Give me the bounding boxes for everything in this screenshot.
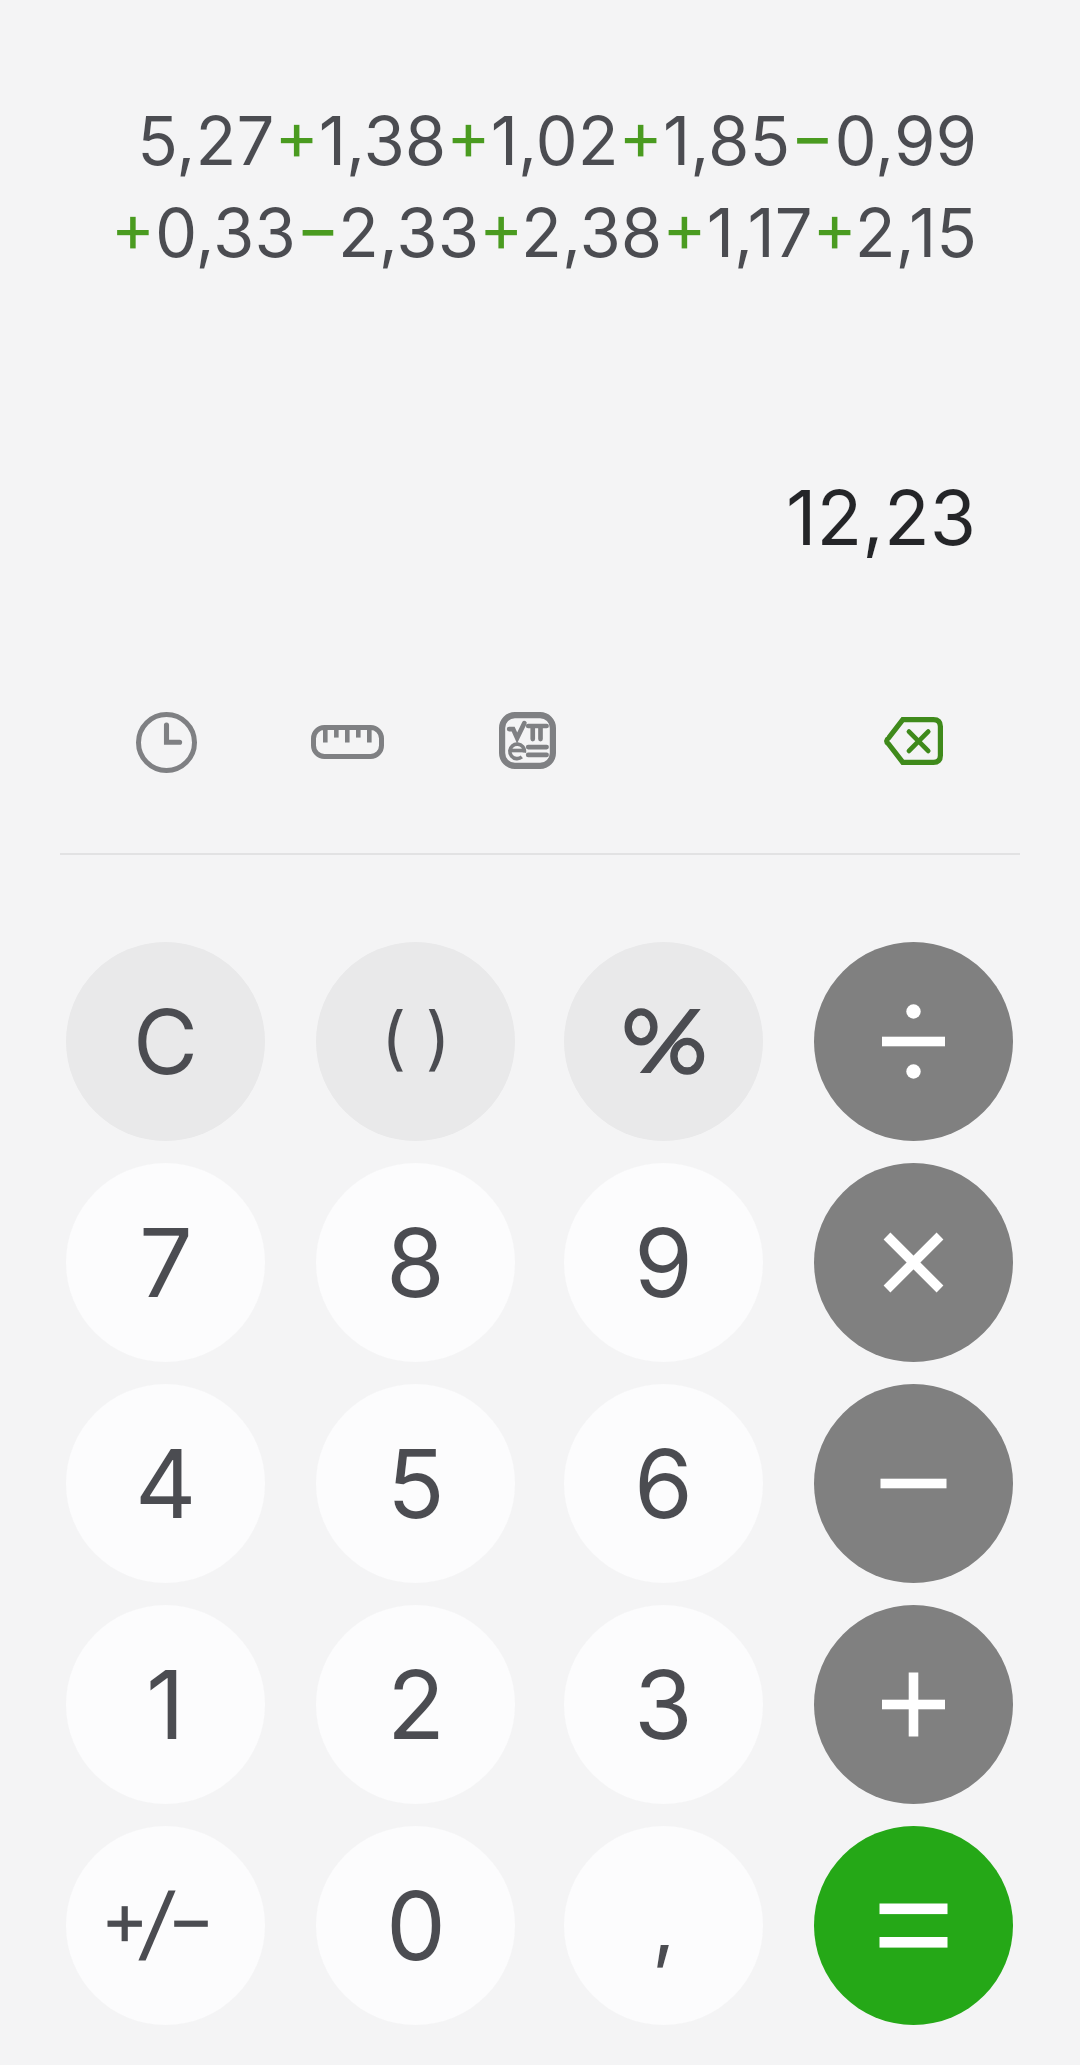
- button[interactable]: 6: [564, 1384, 763, 1583]
- button[interactable]: Scientific calculator: [481, 694, 573, 786]
- staticText: 12,23: [0, 472, 976, 563]
- button[interactable]: ,: [564, 1826, 763, 2025]
- staticText: 3: [634, 1647, 693, 1762]
- button[interactable]: 4: [66, 1384, 265, 1583]
- button[interactable]: 0: [316, 1826, 515, 2025]
- button[interactable]: 2: [316, 1605, 515, 1804]
- button[interactable]: Divide: [814, 942, 1013, 1141]
- button[interactable]: 7: [66, 1163, 265, 1362]
- button[interactable]: 5: [316, 1384, 515, 1583]
- button[interactable]: Multiply: [814, 1163, 1013, 1362]
- button[interactable]: 3: [564, 1605, 763, 1804]
- staticText: 4: [135, 1426, 197, 1541]
- button[interactable]: Subtract: [814, 1384, 1013, 1583]
- staticText: 8: [386, 1205, 445, 1320]
- button[interactable]: History: [120, 696, 212, 788]
- staticText: 6: [634, 1426, 693, 1541]
- staticText: 5: [387, 1426, 445, 1541]
- button[interactable]: ( ): [316, 942, 515, 1141]
- staticText: 7: [139, 1205, 193, 1320]
- button[interactable]: Equals: [814, 1826, 1013, 2025]
- button[interactable]: 9: [564, 1163, 763, 1362]
- staticText: 5,27+1,38+1,02+1,85−0,99 +0,33−2,33+2,38…: [0, 100, 977, 273]
- staticText: 0: [386, 1868, 446, 1983]
- staticText: C: [133, 988, 199, 1096]
- button[interactable]: Backspace: [867, 695, 959, 787]
- button[interactable]: Plus minus: [66, 1826, 265, 2025]
- button[interactable]: Equals: [564, 942, 763, 1141]
- staticText: ,: [652, 1874, 676, 1973]
- button[interactable]: Unit converter: [301, 696, 393, 788]
- staticText: 9: [634, 1205, 693, 1320]
- button[interactable]: 8: [316, 1163, 515, 1362]
- button[interactable]: Add: [814, 1605, 1013, 1804]
- button[interactable]: 1: [66, 1605, 265, 1804]
- staticText: 2: [387, 1647, 445, 1762]
- staticText: ( ): [381, 995, 451, 1078]
- button[interactable]: C: [66, 942, 265, 1141]
- staticText: 1: [146, 1647, 185, 1762]
